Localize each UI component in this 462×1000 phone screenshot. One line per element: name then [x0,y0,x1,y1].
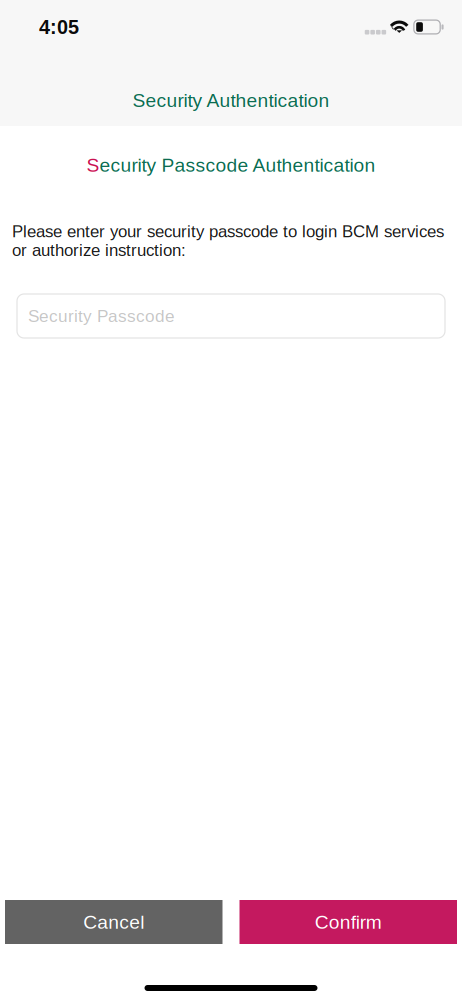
staticText: Confirm [315,911,382,933]
staticText: S [86,154,99,176]
button[interactable]: Confirm [239,900,457,944]
staticText: ecurity Passcode Authentication [99,154,375,176]
staticText: Cancel [83,911,144,933]
button[interactable]: Cancel [5,900,222,944]
staticText: Security Authentication [132,89,329,111]
staticText: 4:05 [39,16,79,38]
staticText: Security Passcode [28,306,175,326]
staticText: Please enter your security passcode to l… [12,222,444,259]
